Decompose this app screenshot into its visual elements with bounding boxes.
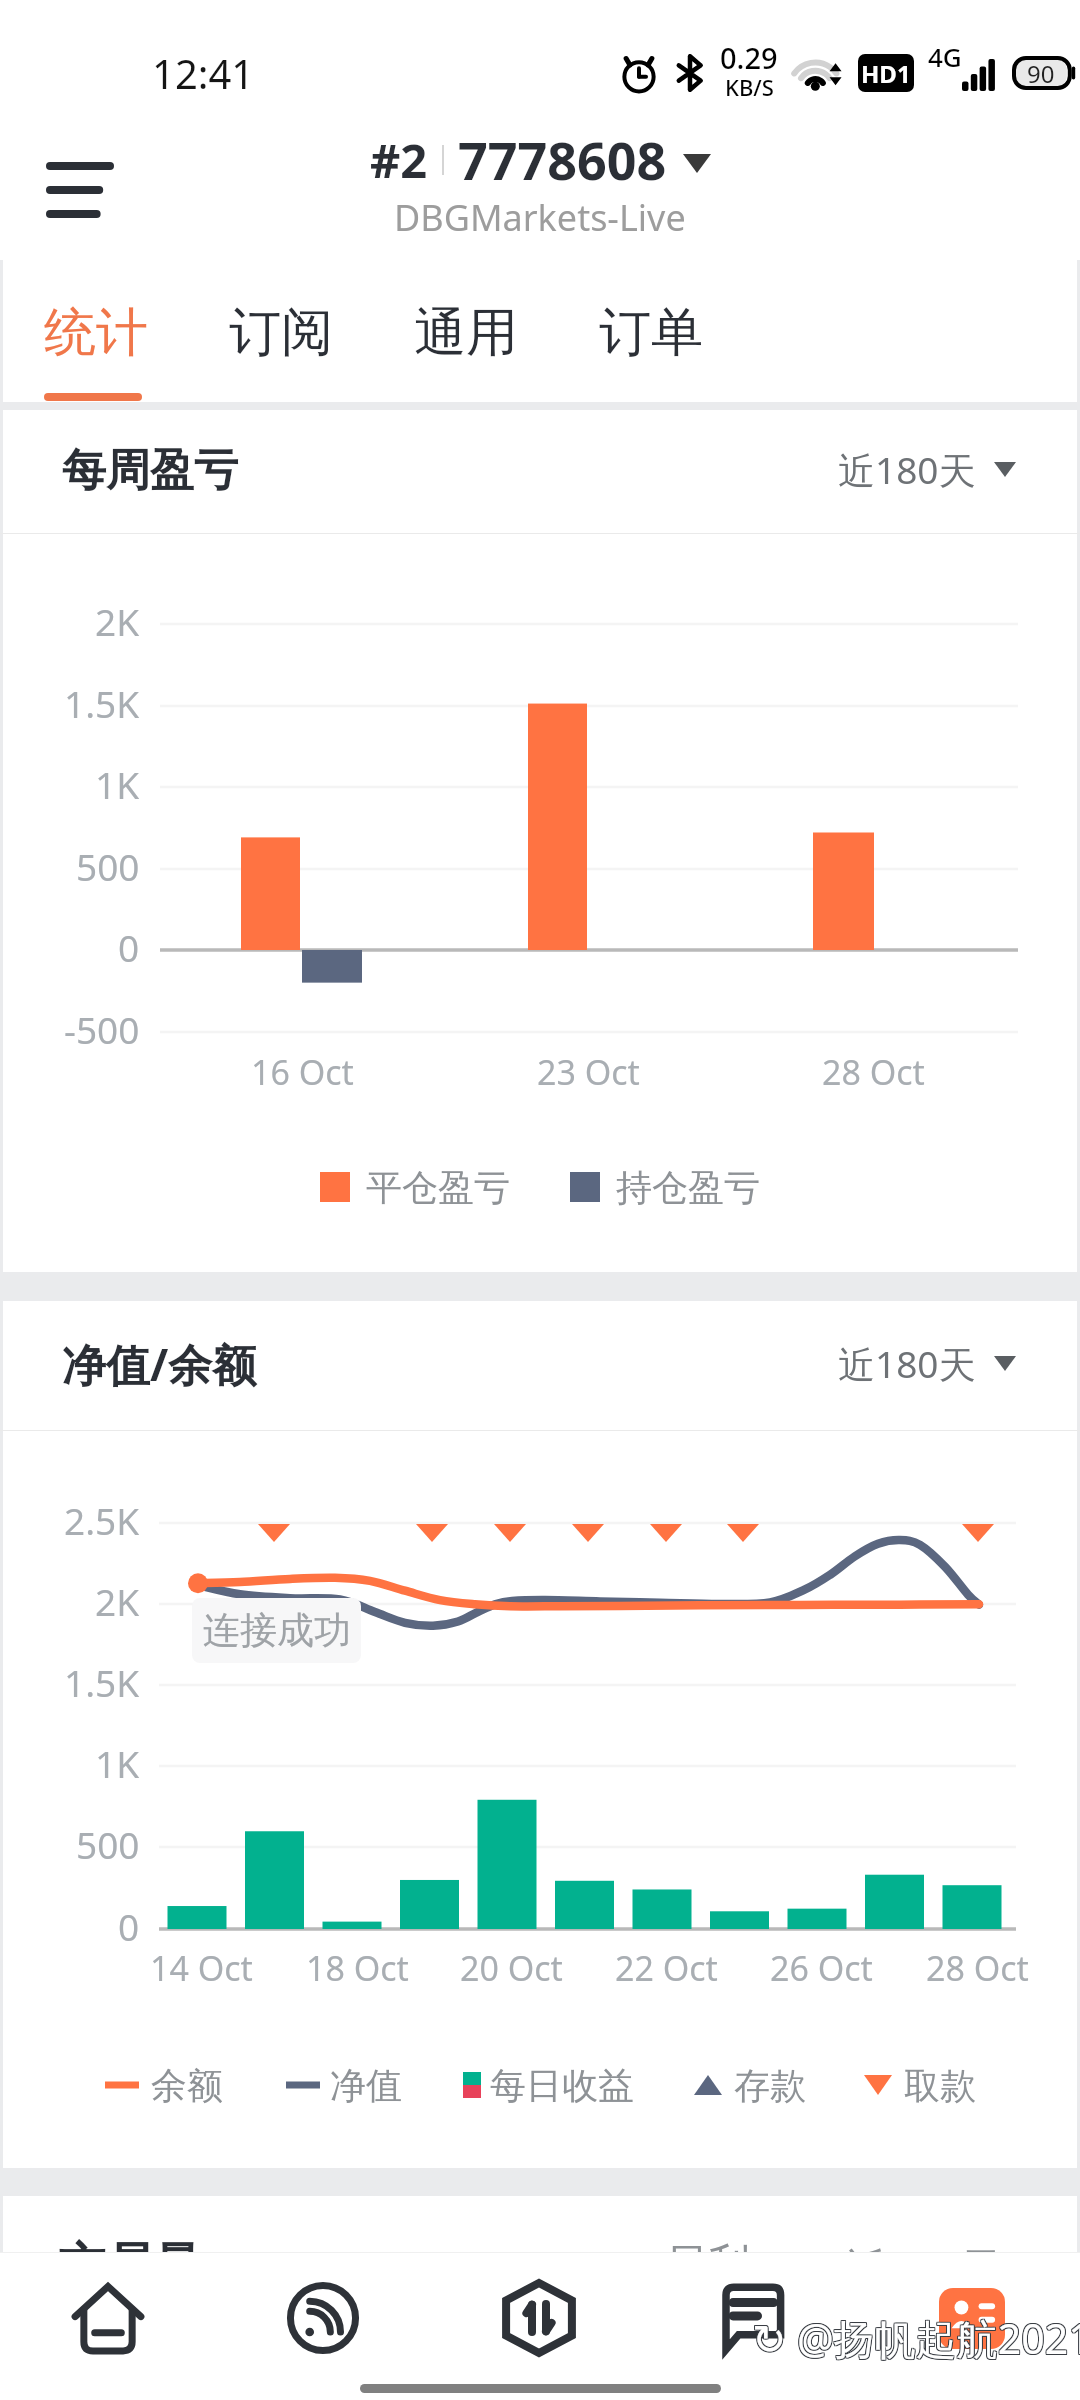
staticText: 订阅	[229, 300, 333, 366]
staticText: 近180天	[838, 444, 976, 495]
staticText: ↻ @扬帆起航2021	[753, 2309, 1080, 2365]
staticText: 28 Oct	[822, 1049, 925, 1095]
staticText: 22 Oct	[615, 1945, 718, 1991]
staticText: DBGMarkets-Live	[394, 193, 686, 242]
staticText: ↻ @扬帆起航2021	[753, 2310, 1080, 2366]
staticText: 12:41	[152, 46, 255, 100]
staticText: 净值	[330, 2063, 402, 2108]
staticText: 20 Oct	[460, 1945, 563, 1991]
button[interactable]: 通用	[414, 262, 564, 409]
staticText: 7778608	[458, 124, 667, 195]
staticText: 1K	[95, 759, 140, 809]
staticText: ↻ @扬帆起航2021	[753, 2311, 1080, 2367]
staticText: 0.29	[720, 38, 778, 77]
staticText: 交易量	[58, 2236, 202, 2296]
staticText: 连接成功	[203, 1607, 351, 1654]
button[interactable]: Signals	[259, 2272, 387, 2364]
staticText: 28 Oct	[926, 1945, 1029, 1991]
staticText: 近180天	[838, 1338, 976, 1389]
staticText: ↻ @扬帆起航2021	[752, 2311, 1080, 2367]
staticText: 23 Oct	[537, 1049, 640, 1095]
staticText: 平仓盈亏	[366, 1165, 510, 1210]
staticText: ↻ @扬帆起航2021	[752, 2310, 1080, 2366]
staticText: 日利	[666, 2238, 750, 2291]
staticText: ↻ @扬帆起航2021	[751, 2310, 1080, 2366]
button[interactable]: 近180天	[838, 1338, 1016, 1389]
staticText: KB/S	[725, 72, 774, 102]
button[interactable]: Trade	[475, 2272, 603, 2364]
button[interactable]: 统计	[44, 262, 194, 409]
button[interactable]: 订单	[599, 262, 749, 409]
button[interactable]: Chat	[690, 2272, 818, 2364]
staticText: 1.5K	[64, 1657, 140, 1707]
staticText: 通用	[414, 300, 518, 366]
button[interactable]: Menu	[28, 138, 132, 242]
staticText: 订单	[599, 300, 703, 366]
staticText: 每周盈亏	[62, 443, 238, 498]
staticText: 统计	[44, 300, 148, 366]
staticText: #2	[370, 128, 428, 192]
button[interactable]: Profile	[908, 2272, 1036, 2364]
staticText: ↻ @扬帆起航2021	[751, 2311, 1080, 2367]
button[interactable]: 订阅	[229, 262, 379, 409]
staticText: 500	[76, 1819, 140, 1869]
staticText: 14 Oct	[150, 1945, 253, 1991]
staticText: 1K	[95, 1738, 140, 1788]
staticText: 16 Oct	[251, 1049, 354, 1095]
staticText: 90	[1027, 57, 1055, 89]
button[interactable]: Home	[44, 2272, 172, 2364]
staticText: 净值/余额	[62, 1334, 257, 1394]
staticText: 2K	[95, 596, 140, 646]
staticText: 0	[118, 1901, 140, 1951]
staticText: 余额	[151, 2063, 223, 2108]
staticText: 2K	[95, 1576, 140, 1626]
staticText: 0	[118, 922, 140, 972]
staticText: 存款	[734, 2063, 806, 2108]
staticText: 18 Oct	[306, 1945, 409, 1991]
staticText: -500	[64, 1004, 140, 1054]
staticText: 1.5K	[64, 678, 140, 728]
button[interactable]: #2	[0, 120, 1080, 240]
staticText: 2.5K	[64, 1495, 140, 1545]
staticText: 4G	[928, 39, 962, 74]
staticText: 近180天	[846, 2238, 1003, 2295]
staticText: 每日收益	[490, 2063, 634, 2108]
button[interactable]: 近180天	[838, 444, 1016, 495]
staticText: 取款	[904, 2063, 976, 2108]
staticText: ↻ @扬帆起航2021	[751, 2309, 1080, 2365]
staticText: 26 Oct	[770, 1945, 873, 1991]
staticText: 持仓盈亏	[616, 1165, 760, 1210]
staticText: 500	[76, 841, 140, 891]
staticText: ↻ @扬帆起航2021	[752, 2309, 1080, 2365]
staticText: HD1	[861, 57, 911, 90]
